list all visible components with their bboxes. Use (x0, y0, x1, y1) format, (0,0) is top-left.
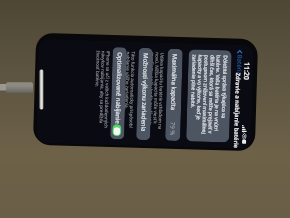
button[interactable]: Možnosti výkonu zariadenia (136, 48, 153, 140)
staticText: Dôležitá správa týkajúca sa batérie. Vaš… (189, 54, 229, 137)
staticText: Možnosti výkonu zariadenia (139, 53, 150, 132)
staticText: 11:20 (241, 62, 251, 80)
staticText: Udáva kapacitu batérie vzhľadom na novú.… (142, 52, 166, 137)
staticText: Táto funkcia automaticky prispôsobí nabí… (123, 51, 137, 136)
button[interactable]: Dôležitá správa týkajúca sa batérie. Vaš… (186, 49, 232, 142)
button[interactable]: Batéria (235, 50, 244, 76)
staticText: Optimalizované nabíjanie (113, 52, 124, 124)
staticText: Batéria (235, 55, 244, 76)
staticText: 79 % (168, 122, 177, 136)
button[interactable]: Optimalizované nabíjanie zapnuté (112, 124, 122, 136)
staticText: Zdravie a nabíjanie batérie (232, 73, 242, 149)
button[interactable]: Maximálna kapacita (165, 49, 183, 141)
staticText: iPhone sa učí z vašich každodenných návy… (93, 50, 112, 135)
staticText: Maximálna kapacita (169, 54, 179, 111)
button[interactable]: Optimalizované nabíjanie (110, 47, 127, 139)
